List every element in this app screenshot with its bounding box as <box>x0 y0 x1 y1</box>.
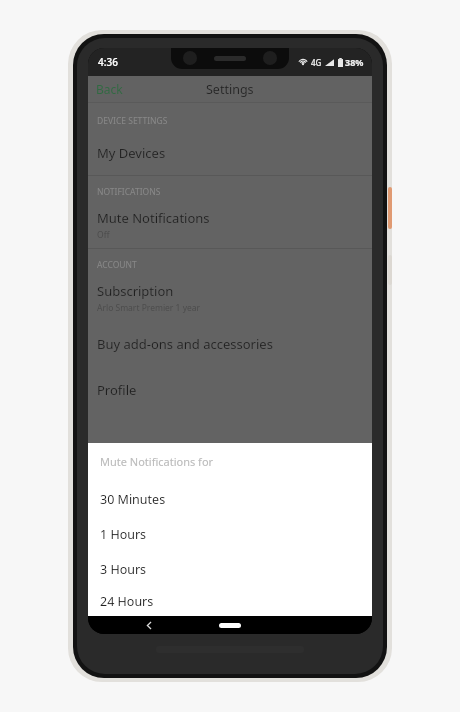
button[interactable]: Mute Notifications <box>88 202 372 248</box>
button[interactable]: Buy add-ons and accessories <box>88 321 372 367</box>
staticText: Profile <box>97 381 137 399</box>
button[interactable]: My Devices <box>88 131 372 175</box>
staticText: Back <box>96 81 123 97</box>
staticText: Arlo Smart Premier 1 year <box>97 302 201 314</box>
button[interactable]: 24 Hours <box>88 587 372 616</box>
staticText: Buy add-ons and accessories <box>97 335 273 353</box>
button[interactable]: Subscription <box>88 275 372 321</box>
staticText: ACCOUNT <box>97 259 137 271</box>
button[interactable]: 1 Hours <box>88 517 372 552</box>
staticText: 1 Hours <box>100 526 147 543</box>
staticText: NOTIFICATIONS <box>97 186 161 198</box>
button[interactable]: Home <box>219 623 241 628</box>
button[interactable]: 30 Minutes <box>88 482 372 517</box>
staticText: Mute Notifications for <box>100 454 214 469</box>
staticText: Off <box>97 229 110 241</box>
staticText: 24 Hours <box>100 593 154 610</box>
staticText: Settings <box>206 81 254 98</box>
button[interactable]: Back <box>140 616 158 634</box>
staticText: DEVICE SETTINGS <box>97 115 168 127</box>
staticText: 3 Hours <box>100 561 147 578</box>
staticText: 4:36 <box>98 55 118 69</box>
button[interactable]: 3 Hours <box>88 552 372 587</box>
staticText: 4G <box>311 57 322 68</box>
button[interactable]: Profile <box>88 367 372 413</box>
staticText: Mute Notifications <box>97 209 210 227</box>
button[interactable]: Back <box>88 77 131 101</box>
staticText: 38% <box>345 56 364 68</box>
staticText: My Devices <box>97 144 166 162</box>
staticText: Subscription <box>97 282 174 300</box>
staticText: 30 Minutes <box>100 491 166 508</box>
